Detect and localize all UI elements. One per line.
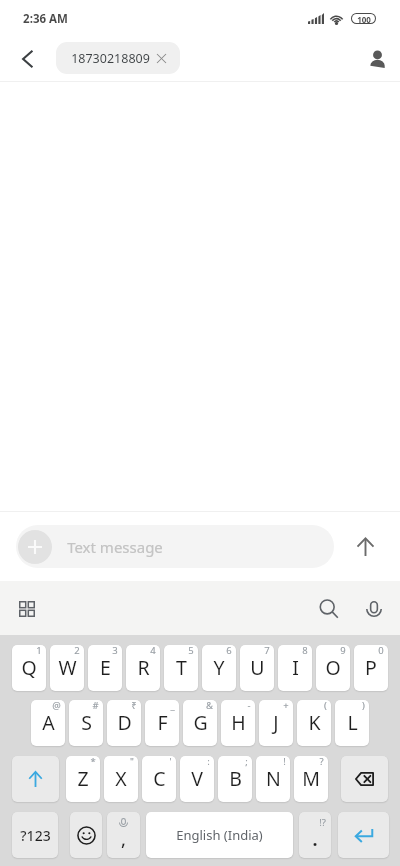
staticText: 5 — [188, 645, 194, 657]
staticText: 4 — [150, 645, 156, 657]
button[interactable]: 8 — [278, 645, 312, 691]
button[interactable]: Comma — [107, 812, 140, 858]
staticText: D — [117, 709, 132, 736]
staticText: W — [58, 654, 77, 681]
staticText: - — [247, 700, 251, 712]
staticText: ?123 — [20, 826, 51, 845]
staticText: , — [121, 827, 126, 852]
button[interactable]: Contact details — [359, 40, 396, 77]
button[interactable]: 1 — [12, 645, 46, 691]
button[interactable]: 18730218809 — [56, 42, 180, 74]
staticText: U — [250, 654, 265, 681]
button[interactable]: 6 — [202, 645, 236, 691]
button[interactable]: 0 — [354, 645, 388, 691]
staticText: K — [308, 709, 321, 736]
staticText: ) — [362, 700, 365, 712]
staticText: Text message — [67, 537, 163, 557]
button[interactable]: ' — [142, 756, 176, 802]
button[interactable]: Period — [299, 812, 331, 858]
button[interactable]: ? — [294, 756, 328, 802]
staticText: ' — [169, 756, 172, 768]
staticText: ( — [324, 700, 327, 712]
button[interactable]: : — [180, 756, 214, 802]
button[interactable]: 2 — [50, 645, 84, 691]
button[interactable]: Enter — [338, 812, 389, 858]
staticText: M — [302, 765, 320, 792]
button[interactable]: - — [221, 700, 255, 746]
button[interactable]: Shift — [12, 756, 59, 802]
staticText: R — [137, 654, 150, 681]
staticText: . — [312, 827, 318, 852]
button[interactable]: Backspace — [341, 756, 388, 802]
staticText: ! — [283, 756, 286, 768]
staticText: 1 — [36, 645, 42, 657]
staticText: English (India) — [176, 826, 263, 844]
button[interactable]: ! — [256, 756, 290, 802]
staticText: 100 — [357, 14, 371, 23]
staticText: " — [130, 756, 134, 768]
staticText: A — [42, 709, 55, 736]
button[interactable]: 9 — [316, 645, 350, 691]
staticText: S — [81, 709, 92, 736]
button[interactable]: Voice input — [354, 589, 393, 628]
staticText: Q — [21, 654, 37, 681]
staticText: * — [90, 756, 96, 768]
staticText: 3 — [112, 645, 118, 657]
button[interactable]: # — [69, 700, 103, 746]
staticText: 2:36 AM — [23, 11, 68, 27]
button[interactable]: Send — [344, 525, 387, 568]
staticText: H — [231, 709, 246, 736]
button[interactable]: Symbols — [12, 812, 58, 858]
button[interactable]: " — [104, 756, 138, 802]
staticText: 7 — [264, 645, 270, 657]
button[interactable]: ₹ — [107, 700, 141, 746]
staticText: # — [92, 700, 99, 712]
staticText: : — [207, 756, 210, 768]
button[interactable]: Space — [146, 812, 293, 858]
button[interactable]: 5 — [164, 645, 198, 691]
staticText: @ — [52, 700, 61, 712]
staticText: T — [176, 654, 187, 681]
button[interactable]: Add attachment — [18, 530, 52, 564]
staticText: _ — [170, 700, 175, 712]
button[interactable]: @ — [31, 700, 65, 746]
staticText: + — [283, 700, 289, 712]
staticText: I — [292, 654, 299, 681]
button[interactable]: Emoji — [70, 812, 102, 858]
staticText: X — [115, 765, 127, 792]
button[interactable]: Back — [9, 40, 46, 77]
staticText: 0 — [378, 645, 384, 657]
button[interactable]: * — [66, 756, 100, 802]
staticText: E — [100, 654, 111, 681]
staticText: N — [266, 765, 281, 792]
staticText: & — [206, 700, 213, 712]
button[interactable]: 4 — [126, 645, 160, 691]
button[interactable]: ) — [335, 700, 369, 746]
staticText: 2 — [74, 645, 80, 657]
staticText: V — [191, 765, 203, 792]
staticText: ; — [245, 756, 248, 768]
staticText: ₹ — [131, 700, 137, 712]
staticText: 6 — [226, 645, 232, 657]
staticText: 9 — [340, 645, 346, 657]
button[interactable]: Keyboard menu — [7, 589, 46, 628]
staticText: F — [157, 709, 168, 736]
staticText: B — [229, 765, 242, 792]
staticText: L — [347, 709, 358, 736]
staticText: !? — [319, 816, 326, 829]
staticText: G — [193, 709, 208, 736]
staticText: 18730218809 — [71, 50, 150, 67]
button[interactable]: Add attachment — [16, 525, 334, 568]
staticText: Z — [77, 765, 89, 792]
button[interactable]: Search — [309, 589, 348, 628]
button[interactable]: & — [183, 700, 217, 746]
button[interactable]: _ — [145, 700, 179, 746]
button[interactable]: 7 — [240, 645, 274, 691]
button[interactable]: ; — [218, 756, 252, 802]
button[interactable]: + — [259, 700, 293, 746]
staticText: 8 — [302, 645, 308, 657]
button[interactable]: ( — [297, 700, 331, 746]
staticText: ? — [319, 756, 324, 768]
button[interactable]: 3 — [88, 645, 122, 691]
staticText: Y — [213, 654, 225, 681]
